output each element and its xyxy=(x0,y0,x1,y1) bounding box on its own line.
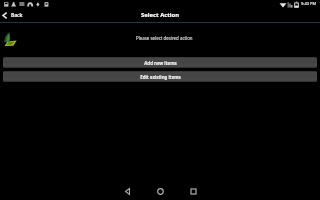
button[interactable]: Recent apps xyxy=(177,178,210,200)
staticText: Add new items xyxy=(144,60,177,66)
staticText: 9:43 PM xyxy=(301,1,317,6)
button[interactable]: Back xyxy=(0,9,27,21)
button[interactable]: Edit existing items xyxy=(3,71,317,82)
button[interactable]: Back xyxy=(111,178,144,200)
button[interactable]: Add new items xyxy=(3,57,317,68)
staticText: Edit existing items xyxy=(140,74,181,80)
staticText: Back xyxy=(11,12,23,19)
staticText: Select Action xyxy=(141,11,180,19)
staticText: Please select desired action xyxy=(136,35,193,41)
button[interactable]: Home xyxy=(144,178,177,200)
